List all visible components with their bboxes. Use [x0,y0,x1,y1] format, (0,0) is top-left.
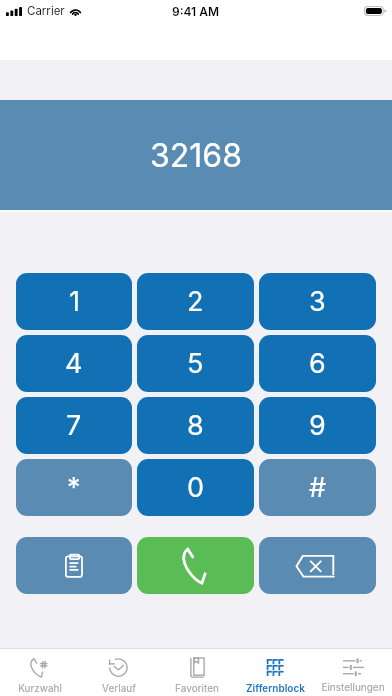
staticText: 4 [65,347,83,380]
button[interactable]: 8 [137,397,254,454]
staticText: 1 [69,285,80,318]
button[interactable]: 6 [259,335,376,392]
staticText: 2 [187,285,204,318]
staticText: 6 [309,347,326,380]
staticText: Kurzwahl [18,682,62,694]
staticText: Verlauf [102,682,136,694]
staticText: 32168 [150,136,242,175]
button[interactable]: Ziffernblock [236,649,314,696]
staticText: Favoriten [175,682,219,694]
staticText: Einstellungen [321,681,385,693]
staticText: # [309,471,327,504]
button[interactable]: 9 [259,397,376,454]
button[interactable]: Notes [16,537,132,594]
button[interactable]: # [259,459,376,516]
staticText: 3 [309,285,326,318]
button[interactable]: 4 [16,335,132,392]
staticText: 8 [187,409,204,442]
button[interactable]: Verlauf [79,649,158,696]
button[interactable]: Favoriten [158,649,236,696]
button[interactable]: * [16,459,132,516]
button[interactable]: Einstellungen [314,649,392,696]
button[interactable]: Delete [259,537,376,594]
button[interactable]: 7 [16,397,132,454]
button[interactable]: 1 [16,273,132,330]
staticText: 9 [309,409,326,442]
staticText: Carrier [27,4,65,18]
button[interactable]: 5 [137,335,254,392]
button[interactable]: 0 [137,459,254,516]
button[interactable]: Call [137,537,254,594]
staticText: 0 [187,471,205,504]
staticText: * [67,471,81,504]
staticText: 5 [187,347,204,380]
staticText: 9:41 AM [172,4,220,19]
staticText: 7 [66,409,82,442]
button[interactable]: Kurzwahl [0,649,79,696]
button[interactable]: 2 [137,273,254,330]
button[interactable]: 3 [259,273,376,330]
staticText: Ziffernblock [246,682,305,694]
